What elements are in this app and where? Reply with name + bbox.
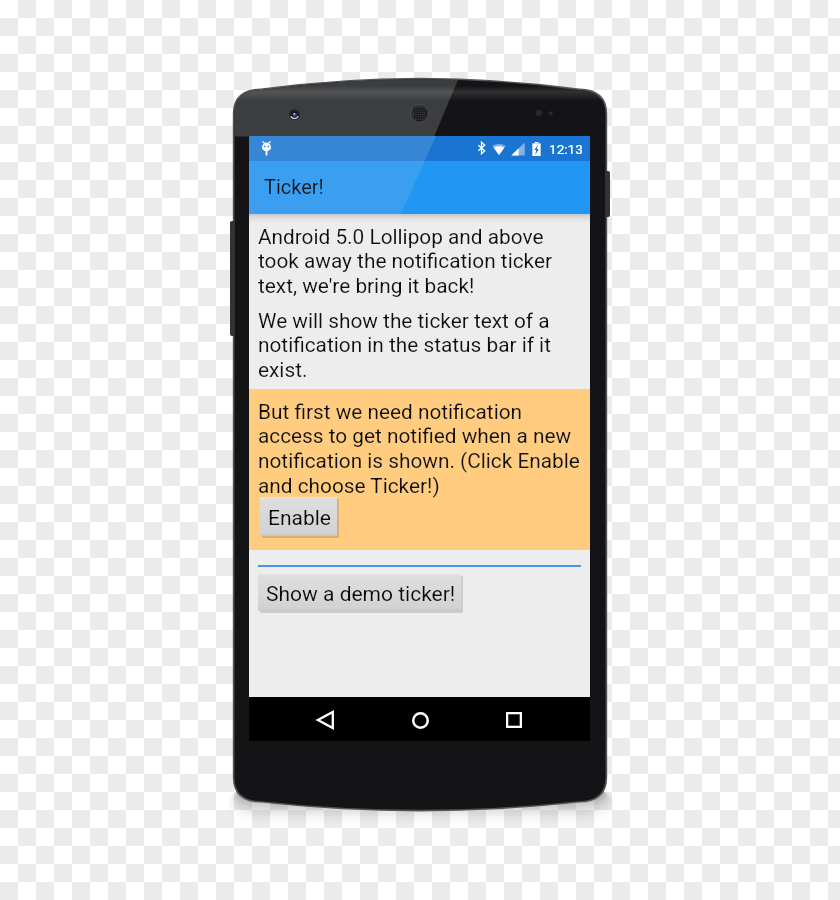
staticText: We will show the ticker text of a notifi… (258, 309, 582, 382)
staticText: Show a demo ticker! (266, 582, 456, 607)
button[interactable]: Back (303, 698, 347, 742)
button[interactable]: Recent apps (492, 698, 536, 742)
staticText: Android 5.0 Lollipop and above took away… (258, 225, 582, 298)
button[interactable]: Home (398, 698, 442, 742)
staticText: 12:13 (549, 141, 583, 157)
staticText: Ticker! (264, 175, 324, 198)
staticText: Enable (268, 506, 331, 531)
button[interactable]: Enable (260, 497, 337, 536)
button[interactable]: Show a demo ticker! (258, 574, 461, 611)
staticText: But first we need notification access to… (258, 400, 582, 498)
